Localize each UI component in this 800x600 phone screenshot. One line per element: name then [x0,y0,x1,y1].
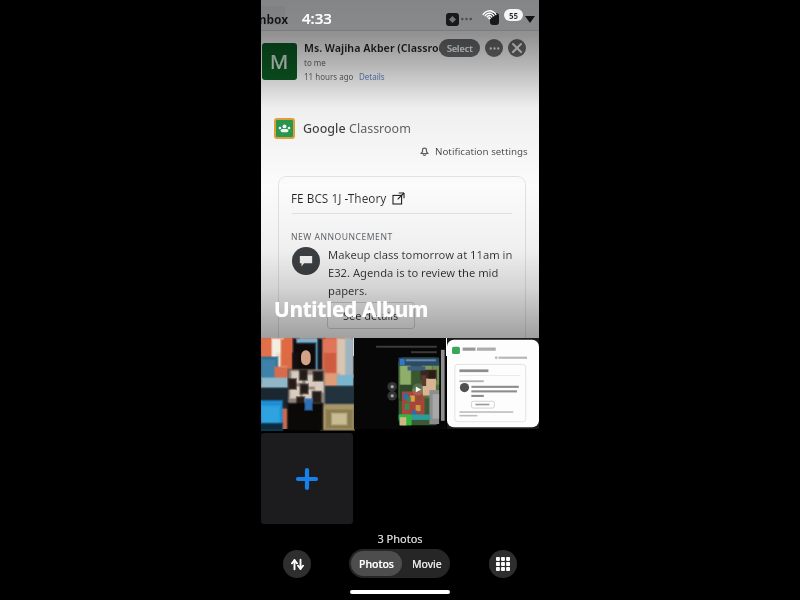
button[interactable]: More options [485,39,503,57]
button[interactable]: Add photos [261,433,353,524]
button[interactable]: Photo 3 [447,338,539,429]
button[interactable]: Photo 2 [354,338,446,429]
button[interactable]: Close [508,39,526,57]
staticText: Notification settings [435,145,528,158]
button[interactable]: Grid view [489,550,517,578]
button[interactable]: Inbox [261,11,289,27]
staticText: Details [359,71,385,82]
staticText: FE BCS 1J -Theory [291,190,387,206]
staticText: See details [343,308,399,323]
staticText: 4:33 [302,8,332,28]
staticText: Select [447,42,473,54]
button[interactable]: Photos [351,551,402,576]
staticText: 3 Photos [261,531,539,546]
staticText: Movie [412,557,442,571]
staticText: Photos [359,557,394,571]
staticText: NEW ANNOUNCEMENT [291,231,393,243]
staticText: Ms. Wajiha Akber (Classroom [304,41,456,55]
staticText: 55 [509,10,519,21]
staticText: Google [303,120,349,137]
button[interactable]: See details [327,302,415,329]
staticText: to me [304,57,326,68]
button[interactable]: Sort [283,550,311,578]
button[interactable]: Photo 1 [261,338,353,429]
staticText: Makeup class tomorrow at 11am in E32. Ag… [328,247,513,298]
button[interactable]: Movie [404,549,450,578]
staticText: Classroom [349,120,411,137]
button[interactable]: Select [439,39,480,57]
staticText: Untitled Album [274,295,429,323]
staticText: 11 hours ago [304,71,354,82]
staticText: M [270,48,289,75]
